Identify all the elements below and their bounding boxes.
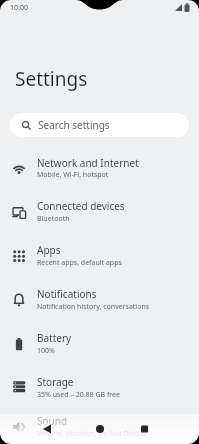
staticText: Mobile, Wi-Fi, hotspot	[37, 170, 109, 180]
staticText: Storage	[37, 375, 74, 389]
staticText: Bluetooth	[37, 214, 70, 224]
staticText: Settings	[15, 66, 88, 92]
staticText: Notifications	[37, 287, 97, 301]
staticText: Search settings	[38, 118, 110, 132]
staticText: Network and Internet	[37, 156, 139, 170]
staticText: 10:00	[10, 3, 28, 13]
staticText: Volume, vibration, Do Not Disturb	[37, 429, 148, 439]
staticText: Notification history, conversations	[37, 302, 150, 312]
staticText: Apps	[37, 243, 61, 257]
staticText: Connected devices	[37, 199, 125, 213]
staticText: Battery	[37, 331, 72, 345]
staticText: Recent apps, default apps	[37, 258, 122, 268]
staticText: 100%	[37, 346, 55, 356]
staticText: 35% used – 20.88 GB free	[37, 390, 120, 400]
staticText: Sound	[37, 414, 68, 428]
